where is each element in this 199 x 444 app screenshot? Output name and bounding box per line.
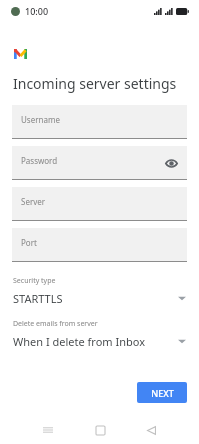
staticText: When I delete from Inbox — [13, 334, 145, 349]
staticText: Incoming server settings — [13, 74, 177, 93]
staticText: Username — [21, 114, 60, 125]
staticText: Security type — [13, 276, 56, 286]
button[interactable]: Delete emails from server — [13, 319, 186, 349]
staticText: STARTTLS — [13, 291, 63, 306]
staticText: 10:00 — [25, 5, 49, 17]
button[interactable]: Show password — [163, 155, 179, 171]
button[interactable]: Home — [90, 420, 110, 440]
staticText: NEXT — [151, 387, 174, 399]
button[interactable]: Port — [12, 228, 187, 262]
button[interactable]: Back — [141, 420, 161, 440]
staticText: Delete emails from server — [13, 319, 98, 329]
staticText: Port — [21, 237, 37, 248]
button[interactable]: Security type — [13, 276, 186, 306]
button[interactable]: Recent apps — [38, 420, 58, 440]
button[interactable]: Username — [12, 105, 187, 139]
button[interactable]: Password — [12, 146, 187, 180]
button[interactable]: NEXT — [137, 382, 187, 403]
staticText: Server — [21, 196, 46, 207]
button[interactable]: Server — [12, 187, 187, 221]
staticText: Password — [21, 155, 58, 166]
